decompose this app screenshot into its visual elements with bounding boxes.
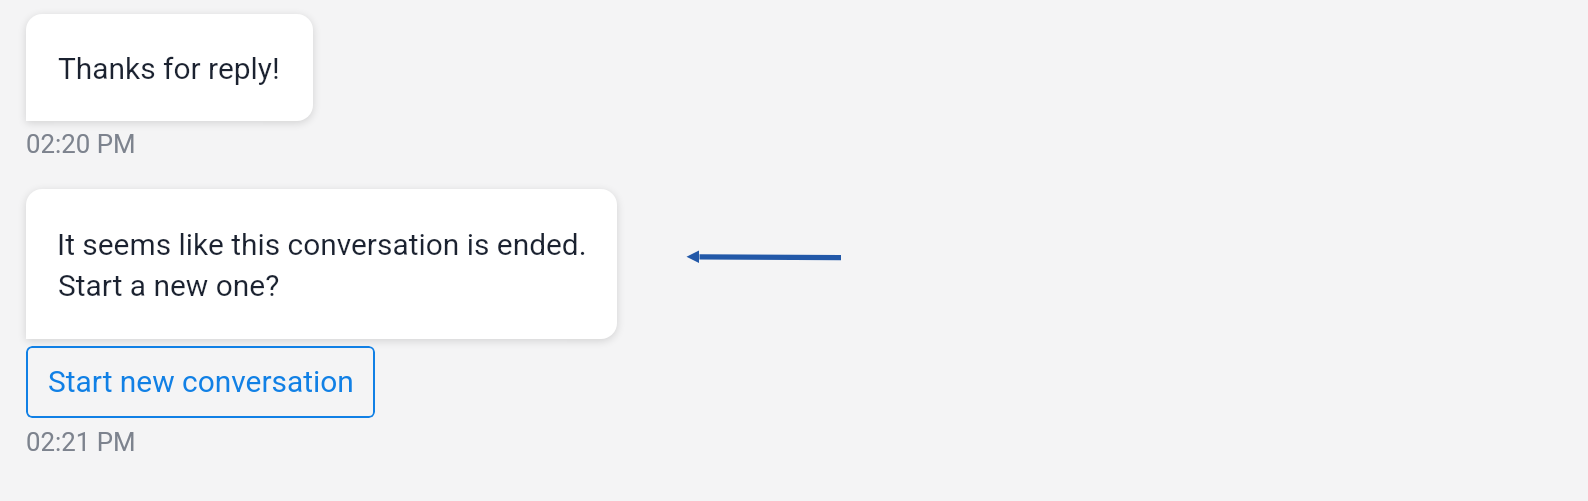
staticText: Start new conversation	[48, 364, 354, 399]
staticText: 02:21 PM	[26, 427, 136, 457]
button[interactable]: Thanks for reply!	[26, 14, 313, 121]
staticText: It seems like this conversation is ended…	[57, 227, 587, 262]
staticText: Thanks for reply!	[58, 51, 280, 86]
button[interactable]: It seems like this conversation is ended…	[26, 189, 617, 339]
other: Annotation arrow pointing at the message	[0, 0, 1588, 501]
button[interactable]: Start new conversation	[26, 346, 375, 418]
staticText: 02:20 PM	[26, 129, 136, 159]
staticText: Start a new one?	[58, 268, 280, 303]
